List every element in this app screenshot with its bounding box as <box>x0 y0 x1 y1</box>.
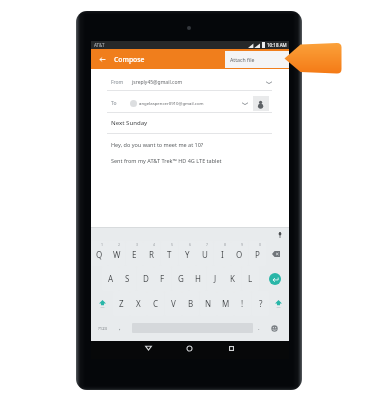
staticText: A <box>108 273 114 284</box>
staticText: E <box>132 249 137 260</box>
button[interactable]: , <box>114 316 126 341</box>
staticText: ! <box>241 298 244 309</box>
staticText: 2 <box>118 242 121 247</box>
staticText: , <box>119 324 121 332</box>
button[interactable]: 7 <box>196 241 213 266</box>
button[interactable]: ? <box>252 291 269 316</box>
button[interactable]: Backspace <box>266 241 286 266</box>
button[interactable]: Back <box>140 341 156 355</box>
button[interactable]: M <box>217 291 234 316</box>
staticText: Hey, do you want to meet me at 10? <box>111 141 204 148</box>
button[interactable]: Recent apps <box>223 341 239 355</box>
staticText: X <box>136 298 141 309</box>
staticText: Q <box>96 249 103 260</box>
staticText: L <box>248 273 253 284</box>
staticText: Compose <box>114 55 145 64</box>
button[interactable]: B <box>182 291 199 316</box>
button[interactable]: Voice input <box>276 231 284 239</box>
staticText: 5 <box>171 242 174 247</box>
staticText: K <box>230 273 235 284</box>
staticText: Attach file <box>230 56 255 63</box>
staticText: 7 <box>206 242 209 247</box>
staticText: AT&T <box>94 42 105 48</box>
staticText: From <box>111 79 124 86</box>
staticText: M <box>222 298 230 309</box>
staticText: N <box>205 298 212 309</box>
button[interactable]: K <box>224 266 241 291</box>
button[interactable]: G <box>172 266 189 291</box>
staticText: F <box>160 273 165 284</box>
staticText: W <box>113 249 121 260</box>
staticText: 6 <box>189 242 192 247</box>
staticText: T <box>167 249 172 260</box>
staticText: ?123 <box>98 326 108 332</box>
staticText: jsreply45@gmail.com <box>132 79 183 86</box>
button[interactable]: D <box>137 266 154 291</box>
button[interactable]: S <box>119 266 136 291</box>
staticText: V <box>171 298 176 309</box>
staticText: U <box>202 249 208 260</box>
button[interactable]: Shift <box>270 291 286 316</box>
staticText: Y <box>185 249 190 260</box>
button[interactable]: Z <box>113 291 130 316</box>
staticText: Sent from my AT&T Trek™ HD 4G LTE tablet <box>111 157 222 164</box>
staticText: S <box>125 273 130 284</box>
staticText: I <box>221 249 224 260</box>
button[interactable]: 8 <box>214 241 231 266</box>
staticText: Z <box>119 298 124 309</box>
button[interactable]: 0 <box>249 241 266 266</box>
staticText: 0 <box>259 242 262 247</box>
staticText: B <box>188 298 194 309</box>
button[interactable]: 2 <box>108 241 125 266</box>
button[interactable]: N <box>200 291 217 316</box>
staticText: 10:18 AM <box>267 42 287 48</box>
button[interactable]: ! <box>234 291 251 316</box>
staticText: D <box>143 273 149 284</box>
staticText: ? <box>259 298 263 309</box>
staticText: 4 <box>153 242 156 247</box>
staticText: 9 <box>241 242 244 247</box>
button[interactable]: X <box>130 291 147 316</box>
button[interactable]: F <box>154 266 171 291</box>
button[interactable]: Open contacts <box>253 96 269 111</box>
button[interactable]: Enter <box>269 273 281 285</box>
button[interactable]: Home <box>181 341 197 355</box>
button[interactable]: 1 <box>91 241 108 266</box>
button[interactable]: ?123 <box>94 316 112 341</box>
button[interactable]: Shift <box>94 291 110 316</box>
button[interactable]: 9 <box>231 241 248 266</box>
staticText: G <box>178 273 184 284</box>
staticText: J <box>214 273 217 284</box>
button[interactable]: H <box>189 266 206 291</box>
button[interactable]: A <box>102 266 119 291</box>
staticText: O <box>236 249 243 260</box>
button[interactable]: 6 <box>179 241 196 266</box>
button[interactable]: 5 <box>161 241 178 266</box>
button[interactable]: J <box>207 266 224 291</box>
button[interactable]: 3 <box>126 241 143 266</box>
button[interactable]: 4 <box>143 241 160 266</box>
staticText: R <box>149 249 154 260</box>
staticText: To <box>111 100 117 107</box>
staticText: 8 <box>224 242 227 247</box>
button[interactable]: Emoji <box>265 316 283 341</box>
staticText: . <box>258 324 260 332</box>
staticText: P <box>255 249 260 260</box>
staticText: 3 <box>136 242 139 247</box>
staticText: Next Sunday <box>111 119 148 127</box>
button[interactable]: L <box>242 266 259 291</box>
staticText: 1 <box>101 242 104 247</box>
staticText: angelaspencer0910@gmail.com <box>139 100 204 106</box>
staticText: H <box>195 273 201 284</box>
staticText: C <box>153 298 159 309</box>
button[interactable]: Navigate up <box>96 53 109 66</box>
button[interactable]: V <box>165 291 182 316</box>
button[interactable]: Attach file <box>225 51 289 68</box>
button[interactable]: C <box>147 291 164 316</box>
